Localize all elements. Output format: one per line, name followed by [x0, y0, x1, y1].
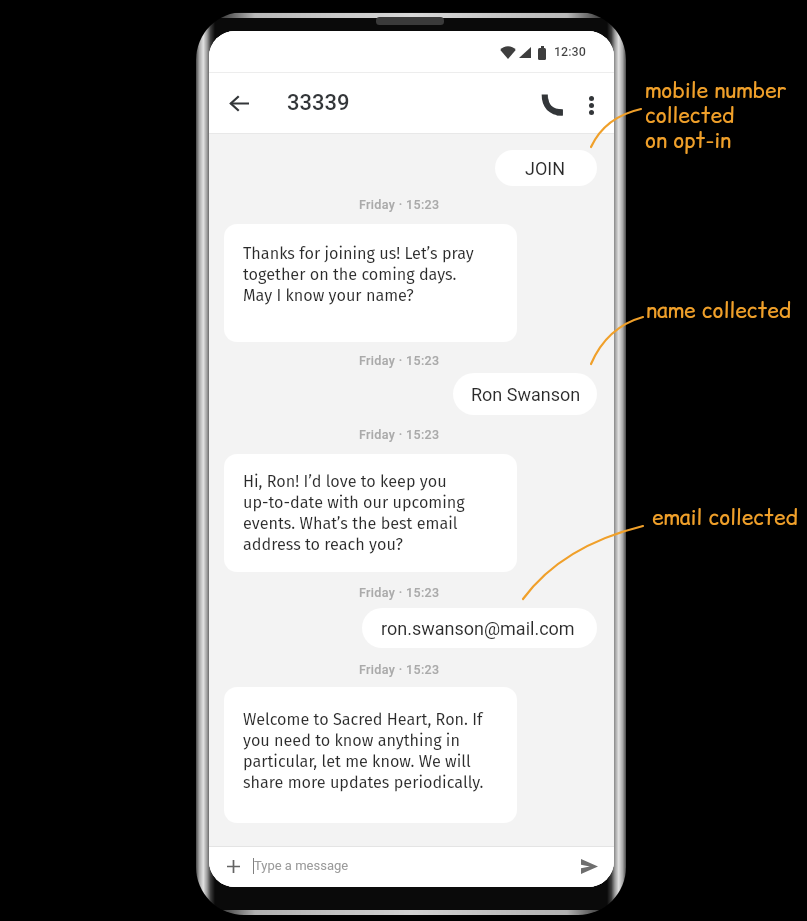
staticText: 12:30 — [554, 44, 586, 59]
button[interactable]: Send — [567, 846, 611, 887]
staticText: Welcome to Sacred Heart, Ron. If you nee… — [243, 710, 484, 793]
button[interactable]: Thanks for joining us! Let’s pray togeth… — [224, 224, 517, 342]
button[interactable]: Welcome to Sacred Heart, Ron. If you nee… — [224, 687, 517, 823]
button[interactable]: Hi, Ron! I’d love to keep you up-to-date… — [224, 454, 517, 572]
staticText: Type a message — [254, 858, 349, 873]
staticText: Friday · 15:23 — [359, 662, 440, 677]
staticText: name collected — [646, 296, 792, 325]
staticText: ron.swanson@mail.com — [381, 618, 575, 639]
button[interactable]: More options — [571, 85, 611, 125]
staticText: email collected — [652, 503, 798, 532]
staticText: Friday · 15:23 — [359, 197, 440, 212]
staticText: 33339 — [287, 90, 350, 116]
button[interactable]: Back — [217, 81, 261, 125]
button[interactable]: JOIN — [495, 150, 597, 186]
staticText: Friday · 15:23 — [359, 585, 440, 600]
staticText: mobile number collected on opt-in — [645, 76, 787, 155]
staticText: Thanks for joining us! Let’s pray togeth… — [243, 244, 474, 306]
button[interactable]: Call — [530, 83, 574, 127]
staticText: Friday · 15:23 — [359, 427, 440, 442]
button[interactable]: Ron Swanson — [453, 373, 597, 415]
button[interactable]: Add attachment — [213, 846, 253, 886]
staticText: Hi, Ron! I’d love to keep you up-to-date… — [243, 472, 465, 555]
staticText: Ron Swanson — [471, 384, 581, 405]
staticText: JOIN — [525, 158, 566, 179]
button[interactable]: ron.swanson@mail.com — [362, 608, 597, 648]
staticText: Friday · 15:23 — [359, 353, 440, 368]
